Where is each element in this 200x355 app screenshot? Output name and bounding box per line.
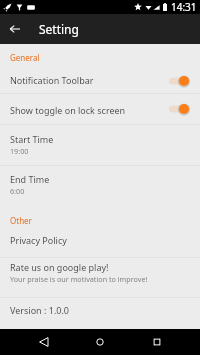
button[interactable]: Back — [0, 14, 30, 44]
staticText: Setting — [39, 21, 79, 37]
button[interactable]: End Time — [0, 166, 200, 206]
staticText: 14:31 — [171, 0, 197, 14]
button[interactable]: Home — [87, 329, 113, 355]
button[interactable]: Back — [31, 329, 57, 355]
staticText: 6:00 — [10, 186, 25, 196]
button[interactable]: Version : 1.0.0 — [0, 298, 200, 325]
button[interactable]: Rate us on google play! — [0, 258, 200, 297]
button[interactable]: Recents — [144, 329, 170, 355]
staticText: 19:00 — [10, 146, 29, 156]
staticText: Your praise is our motivation to improve… — [10, 274, 148, 284]
button[interactable]: Privacy Policy — [0, 234, 200, 257]
staticText: Other — [10, 215, 32, 226]
button[interactable]: Notification Toolbar — [0, 69, 200, 93]
staticText: Show toggle on lock screen — [10, 104, 169, 116]
staticText: Rate us on google play! — [10, 261, 109, 273]
staticText: Start Time — [10, 133, 54, 145]
staticText: Notification Toolbar — [10, 74, 169, 86]
staticText: General — [10, 52, 40, 63]
staticText: End Time — [10, 173, 50, 185]
staticText: Version : 1.0.0 — [10, 304, 70, 316]
staticText: Privacy Policy — [10, 234, 67, 246]
button[interactable]: Show toggle on lock screen — [0, 94, 200, 124]
button[interactable]: Start Time — [0, 125, 200, 165]
